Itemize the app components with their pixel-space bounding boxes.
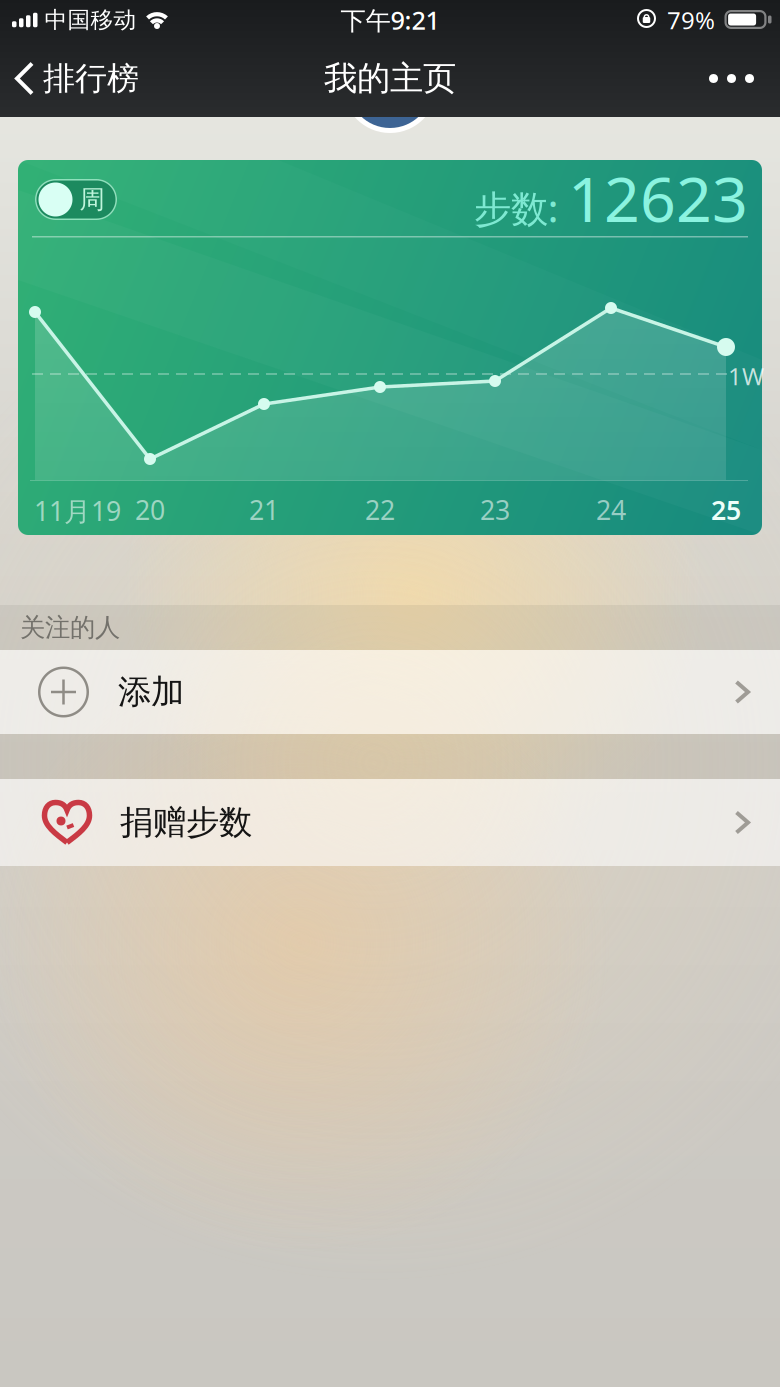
button[interactable]: 排行榜 xyxy=(14,40,139,117)
staticText: 周 xyxy=(79,184,104,215)
button[interactable]: 添加 xyxy=(0,650,780,734)
staticText: 捐赠步数 xyxy=(120,802,252,843)
button[interactable]: 周 xyxy=(35,179,117,220)
staticText: 11月19 xyxy=(34,493,121,528)
staticText: 22 xyxy=(365,492,395,527)
button[interactable]: 更多 xyxy=(709,40,754,117)
staticText: 我的主页 xyxy=(324,58,456,99)
staticText: 24 xyxy=(596,492,626,527)
staticText: 中国移动 xyxy=(44,6,136,34)
staticText: 排行榜 xyxy=(43,59,139,98)
staticText: 步数: xyxy=(474,183,558,233)
staticText: 20 xyxy=(135,492,165,527)
staticText: 下午9:21 xyxy=(340,3,439,37)
staticText: 1W xyxy=(728,360,764,392)
button[interactable]: 捐赠步数 xyxy=(0,779,780,866)
staticText: 12623 xyxy=(568,156,748,239)
staticText: 21 xyxy=(249,492,279,527)
staticText: 添加 xyxy=(118,671,184,712)
staticText: 23 xyxy=(480,492,510,527)
staticText: 关注的人 xyxy=(20,612,120,643)
staticText: 25 xyxy=(711,492,741,527)
staticText: 79% xyxy=(667,4,715,36)
